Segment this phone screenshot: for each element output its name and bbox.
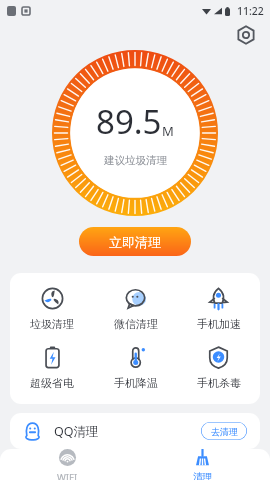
button[interactable]: 手机降温 xyxy=(94,346,177,390)
staticText: 手机杀毒 xyxy=(197,376,241,390)
button[interactable]: QQ清理 xyxy=(10,413,260,449)
staticText: WIFI xyxy=(57,471,78,480)
button[interactable]: 超级省电 xyxy=(10,346,94,390)
staticText: 89.5 xyxy=(96,99,162,144)
staticText: 11:22 xyxy=(237,4,264,18)
staticText: 建议垃圾清理 xyxy=(104,154,167,167)
button[interactable]: 去清理 xyxy=(201,422,247,440)
button[interactable]: 手机加速 xyxy=(177,287,260,331)
staticText: 垃圾清理 xyxy=(30,317,74,331)
button[interactable]: WIFI xyxy=(0,449,135,480)
button[interactable]: 手机杀毒 xyxy=(177,346,260,390)
staticText: 微信清理 xyxy=(114,317,158,331)
button[interactable]: 立即清理 xyxy=(79,227,191,256)
button[interactable]: 微信清理 xyxy=(94,287,177,331)
staticText: 去清理 xyxy=(211,426,238,437)
staticText: 超级省电 xyxy=(30,376,74,390)
staticText: QQ清理 xyxy=(54,423,99,440)
staticText: 清理 xyxy=(193,471,212,480)
button[interactable]: 垃圾清理 xyxy=(10,287,94,331)
staticText: M xyxy=(162,122,174,140)
staticText: 手机加速 xyxy=(197,317,241,331)
staticText: 手机降温 xyxy=(114,376,158,390)
staticText: 立即清理 xyxy=(109,234,161,250)
button[interactable]: 清理 xyxy=(135,449,270,480)
button[interactable]: Settings xyxy=(233,22,259,48)
